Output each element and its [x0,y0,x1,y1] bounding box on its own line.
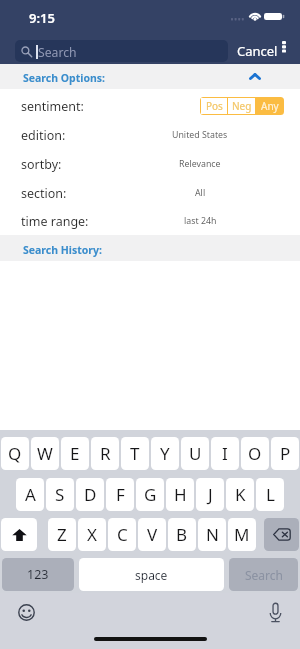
staticText: G [144,483,157,506]
staticText: I [222,442,228,465]
button[interactable]: N [198,518,226,551]
button[interactable]: K [226,478,254,511]
staticText: W [37,442,53,465]
button[interactable]: Neg [228,98,255,114]
staticText: time range: [21,213,89,230]
button[interactable]: Backspace [264,518,299,551]
button[interactable]: R [91,437,119,470]
button[interactable]: I [211,437,239,470]
staticText: sortby: [21,156,62,173]
button[interactable]: time range: [0,206,300,235]
staticText: M [234,523,250,546]
staticText: All [195,187,206,199]
staticText: Search [245,567,283,583]
button[interactable]: H [166,478,194,511]
staticText: Search Options: [23,71,106,85]
staticText: H [174,483,187,506]
staticText: 9:15 [29,9,55,27]
button[interactable]: Dictation [267,602,284,623]
button[interactable]: 123 [2,558,74,591]
button[interactable]: M [228,518,256,551]
button[interactable]: Search History: [0,235,300,261]
button[interactable]: sentiment: [0,91,300,120]
button[interactable]: V [138,518,166,551]
staticText: Z [57,523,67,546]
button[interactable]: Search Options: [0,64,300,89]
staticText: V [147,523,158,546]
staticText: edition: [21,127,66,144]
button[interactable]: sortby: [0,149,300,178]
staticText: Pos [206,99,223,113]
button[interactable]: edition: [0,120,300,149]
staticText: N [206,523,219,546]
button[interactable]: O [241,437,269,470]
staticText: space [135,567,168,583]
button[interactable]: Z [48,518,76,551]
button[interactable]: A [16,478,44,511]
button[interactable]: X [78,518,106,551]
button[interactable]: Y [151,437,179,470]
staticText: T [130,442,140,465]
staticText: Cancel [237,42,278,60]
staticText: A [25,483,36,506]
button[interactable]: S [46,478,74,511]
staticText: X [87,523,97,546]
button[interactable]: Search [229,558,298,591]
staticText: R [100,442,111,465]
button[interactable]: More options [276,38,292,58]
staticText: K [235,483,246,506]
staticText: sentiment: [21,98,84,115]
staticText: O [248,442,262,465]
button[interactable]: B [168,518,196,551]
button[interactable]: T [121,437,149,470]
staticText: last 24h [184,215,217,227]
staticText: Neg [232,99,252,113]
staticText: 123 [27,566,49,583]
staticText: B [176,523,188,546]
button[interactable]: Shift [1,518,37,551]
staticText: Search [38,44,77,61]
staticText: D [84,483,97,506]
button[interactable]: E [61,437,89,470]
staticText: Y [160,442,170,465]
button[interactable]: Emoji [18,604,35,621]
staticText: Search History: [23,243,103,257]
button[interactable]: F [106,478,134,511]
button[interactable]: Cancel [233,40,281,62]
staticText: L [266,483,275,506]
staticText: Q [8,442,22,465]
staticText: United States [172,129,228,141]
button[interactable]: L [256,478,284,511]
button[interactable]: Any [256,98,283,114]
staticText: Any [261,99,279,113]
button[interactable]: U [181,437,209,470]
button[interactable]: G [136,478,164,511]
staticText: U [189,442,202,465]
button[interactable]: section: [0,178,300,207]
button[interactable]: Pos [201,98,227,114]
button[interactable]: Q [1,437,29,470]
button[interactable]: J [196,478,224,511]
button[interactable]: space [79,558,224,591]
staticText: S [55,483,65,506]
staticText: E [70,442,80,465]
staticText: J [208,483,213,506]
button[interactable]: C [108,518,136,551]
button[interactable]: Search [15,40,228,62]
staticText: section: [21,185,67,202]
staticText: F [116,483,125,506]
staticText: C [117,523,128,546]
button[interactable]: P [271,437,299,470]
staticText: Relevance [179,158,221,170]
staticText: P [280,442,291,465]
button[interactable]: W [31,437,59,470]
button[interactable]: D [76,478,104,511]
